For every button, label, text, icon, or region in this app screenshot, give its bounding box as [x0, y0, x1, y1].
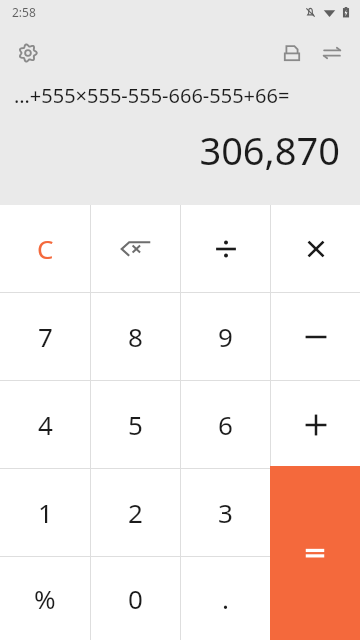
button[interactable]: 8: [91, 293, 180, 380]
staticText: …+555×555-555-666-555+66=: [14, 82, 290, 109]
staticText: 4: [38, 407, 53, 442]
staticText: .: [222, 581, 229, 616]
staticText: %: [34, 581, 56, 616]
staticText: 3: [218, 495, 233, 530]
staticText: 5: [128, 407, 143, 442]
button[interactable]: 1: [0, 469, 90, 556]
staticText: 2:58: [12, 4, 36, 20]
staticText: 6: [218, 407, 233, 442]
staticText: 0: [128, 581, 143, 616]
staticText: 8: [128, 319, 143, 354]
staticText: 9: [218, 319, 233, 354]
button[interactable]: %: [0, 557, 90, 640]
button[interactable]: History: [272, 33, 312, 73]
button[interactable]: divide: [181, 205, 270, 292]
button[interactable]: clear: [0, 205, 90, 292]
button[interactable]: 9: [181, 293, 270, 380]
button[interactable]: 0: [91, 557, 180, 640]
button[interactable]: minus: [271, 293, 360, 380]
staticText: 2: [128, 495, 143, 530]
button[interactable]: multiply: [271, 205, 360, 292]
button[interactable]: 2: [91, 469, 180, 556]
button[interactable]: Convert: [312, 33, 352, 73]
button[interactable]: 6: [181, 381, 270, 468]
button[interactable]: 5: [91, 381, 180, 468]
button[interactable]: 3: [181, 469, 270, 556]
button[interactable]: 7: [0, 293, 90, 380]
button[interactable]: .: [181, 557, 270, 640]
staticText: C: [37, 231, 54, 266]
staticText: 7: [38, 319, 53, 354]
button[interactable]: 4: [0, 381, 90, 468]
staticText: 306,870: [199, 124, 340, 176]
button[interactable]: Settings: [8, 33, 48, 73]
staticText: 1: [38, 495, 53, 530]
button[interactable]: plus: [271, 381, 360, 468]
button[interactable]: Equals: [270, 466, 360, 640]
button[interactable]: backspace: [91, 205, 180, 292]
